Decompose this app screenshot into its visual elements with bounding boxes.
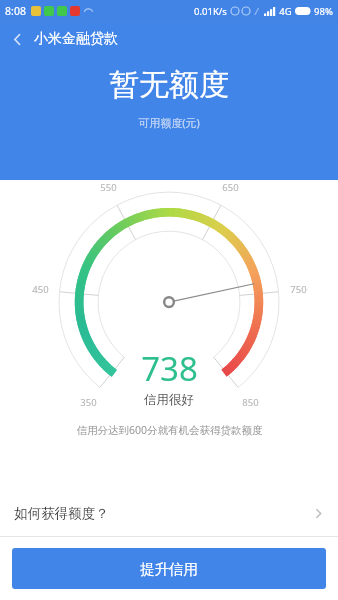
button[interactable]: 提升信用 [12, 548, 326, 589]
staticText: 信用分达到600分就有机会获得贷款额度 [76, 423, 263, 437]
staticText: 738 [141, 346, 198, 391]
staticText: 98% [314, 5, 333, 18]
staticText: 350 [80, 396, 97, 409]
staticText: 450 [32, 283, 49, 296]
staticText: 提升信用 [140, 560, 198, 578]
staticText: 750 [290, 283, 307, 296]
staticText: 4G [279, 5, 292, 18]
staticText: 650 [222, 181, 239, 194]
button[interactable]: 如何获得额度？ [0, 490, 338, 536]
staticText: 550 [100, 181, 117, 194]
staticText: 暂无额度 [109, 66, 229, 104]
button[interactable]: Back [0, 22, 34, 56]
staticText: 如何获得额度？ [14, 505, 109, 522]
staticText: 850 [242, 396, 259, 409]
staticText: 8:08 [5, 4, 26, 18]
staticText: 可用额度(元) [138, 115, 200, 130]
staticText: 信用很好 [144, 392, 194, 408]
staticText: 小米金融贷款 [34, 30, 118, 48]
staticText: 0.01K/s [194, 5, 227, 18]
